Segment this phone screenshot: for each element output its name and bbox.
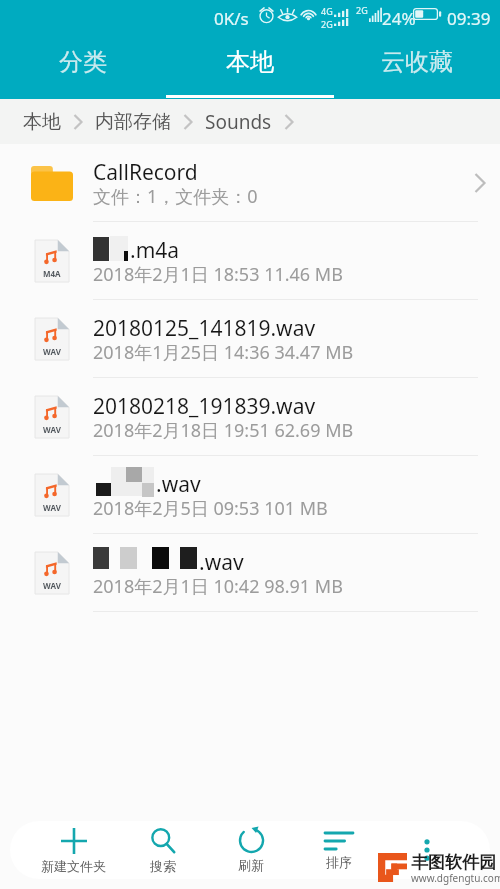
staticText: 排序 <box>326 854 352 870</box>
button[interactable]: 本地 <box>166 30 333 94</box>
staticText: 0K/s <box>214 7 249 30</box>
button[interactable]: WAV <box>0 456 500 534</box>
staticText: 2018年1月25日 14:36 34.47 MB <box>93 340 354 365</box>
staticText: 4G <box>321 5 333 17</box>
staticText: .wav <box>199 548 244 577</box>
staticText: 新建文件夹 <box>41 858 106 874</box>
staticText: 2G <box>321 18 333 30</box>
staticText: Sounds <box>205 109 272 135</box>
button[interactable]: 云收藏 <box>333 30 500 94</box>
button[interactable]: 更多 <box>383 821 471 879</box>
staticText: 2018年2月18日 19:51 62.69 MB <box>93 418 354 443</box>
button[interactable]: 新建文件夹 <box>29 821 118 879</box>
staticText: 09:39 <box>447 7 491 30</box>
staticText: 文件：1，文件夹：0 <box>93 184 258 209</box>
staticText: 2G <box>356 4 368 16</box>
staticText: 20180218_191839.wav <box>93 392 316 421</box>
staticText: 本地 <box>23 110 61 134</box>
staticText: .m4a <box>130 236 180 265</box>
button[interactable]: 刷新 <box>207 821 295 879</box>
button[interactable]: WAV <box>0 534 500 612</box>
staticText: WAV <box>43 424 61 435</box>
staticText: WAV <box>43 346 61 357</box>
staticText: 20180125_141819.wav <box>93 314 316 343</box>
staticText: 刷新 <box>238 857 264 873</box>
button[interactable]: 分类 <box>0 30 166 94</box>
button[interactable]: M4A <box>0 222 500 300</box>
button[interactable]: 搜索 <box>118 821 207 879</box>
staticText: M4A <box>43 268 61 279</box>
button[interactable]: 排序 <box>295 821 383 879</box>
staticText: .wav <box>156 470 201 499</box>
button[interactable]: WAV <box>0 378 500 456</box>
button[interactable]: CallRecord <box>0 144 500 222</box>
staticText: 搜索 <box>150 858 176 874</box>
staticText: 本地 <box>226 47 274 77</box>
staticText: 云收藏 <box>381 47 453 77</box>
staticText: WAV <box>43 580 61 591</box>
button[interactable]: 进入文件夹 <box>460 144 500 222</box>
staticText: www.dgfengtu.com <box>411 871 500 885</box>
staticText: 内部存储 <box>95 110 171 134</box>
staticText: 24% <box>382 7 416 30</box>
button[interactable]: WAV <box>0 300 500 378</box>
button[interactable]: Sounds <box>205 109 272 135</box>
staticText: 丰图软件园 <box>411 852 496 873</box>
staticText: 分类 <box>59 47 107 77</box>
button[interactable]: 内部存储 <box>95 110 171 134</box>
staticText: WAV <box>43 502 61 513</box>
staticText: 2018年2月1日 18:53 11.46 MB <box>93 262 343 287</box>
staticText: CallRecord <box>93 158 198 187</box>
staticText: 2018年2月5日 09:53 101 MB <box>93 496 328 521</box>
staticText: 2018年2月1日 10:42 98.91 MB <box>93 574 343 599</box>
button[interactable]: 本地 <box>23 110 61 134</box>
